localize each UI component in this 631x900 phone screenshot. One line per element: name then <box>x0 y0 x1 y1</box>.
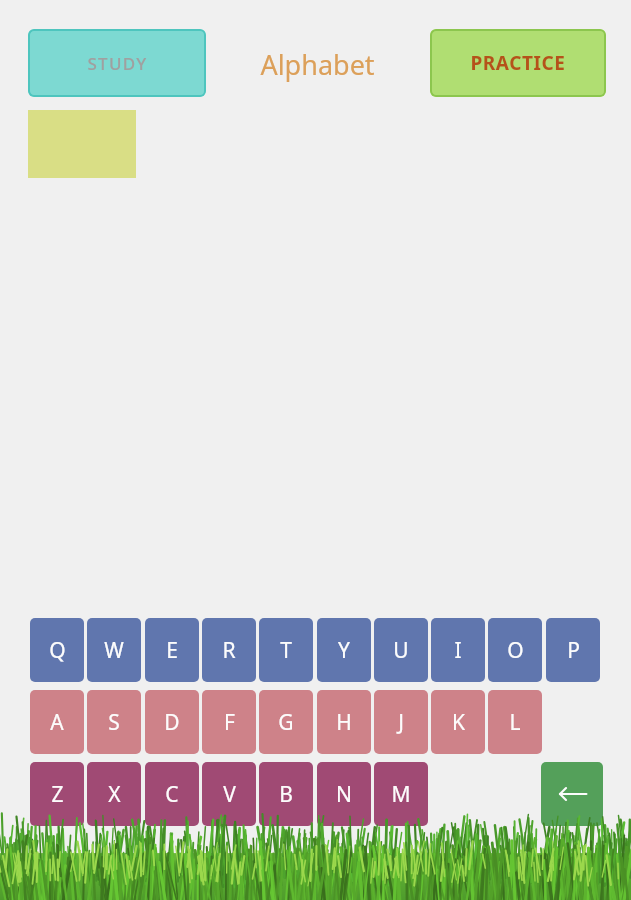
staticText: T <box>280 636 292 665</box>
staticText: R <box>222 636 236 665</box>
button[interactable]: H <box>317 690 371 754</box>
button[interactable]: Y <box>317 618 371 682</box>
button[interactable]: M <box>374 762 428 826</box>
staticText: P <box>567 636 580 665</box>
staticText: V <box>223 780 236 809</box>
staticText: Y <box>338 636 350 665</box>
button[interactable]: S <box>87 690 141 754</box>
button[interactable]: F <box>202 690 256 754</box>
staticText: W <box>104 636 124 665</box>
button[interactable]: PRACTICE <box>430 29 606 97</box>
button[interactable]: N <box>317 762 371 826</box>
button[interactable]: O <box>488 618 542 682</box>
button[interactable]: Z <box>30 762 84 826</box>
button[interactable]: R <box>202 618 256 682</box>
staticText: H <box>336 708 352 737</box>
button[interactable]: Backspace <box>541 762 603 826</box>
button[interactable]: Q <box>30 618 84 682</box>
staticText: STUDY <box>87 52 148 75</box>
staticText: S <box>108 708 120 737</box>
button[interactable]: K <box>431 690 485 754</box>
button[interactable]: W <box>87 618 141 682</box>
button[interactable]: V <box>202 762 256 826</box>
staticText: M <box>391 780 411 809</box>
button[interactable]: STUDY <box>28 29 206 97</box>
button[interactable]: J <box>374 690 428 754</box>
staticText: X <box>108 780 121 809</box>
staticText: D <box>164 708 180 737</box>
button[interactable]: D <box>145 690 199 754</box>
staticText: Z <box>51 780 64 809</box>
button[interactable]: X <box>87 762 141 826</box>
button[interactable]: C <box>145 762 199 826</box>
staticText: N <box>336 780 352 809</box>
staticText: J <box>398 708 404 737</box>
staticText: B <box>279 780 293 809</box>
staticText: L <box>509 708 521 737</box>
staticText: O <box>507 636 524 665</box>
button[interactable]: U <box>374 618 428 682</box>
staticText: K <box>452 708 465 737</box>
button[interactable]: E <box>145 618 199 682</box>
button[interactable]: I <box>431 618 485 682</box>
staticText: E <box>166 636 178 665</box>
staticText: G <box>278 708 294 737</box>
staticText: Alphabet <box>260 46 375 83</box>
staticText: Q <box>49 636 66 665</box>
staticText: C <box>165 780 179 809</box>
staticText: A <box>50 708 64 737</box>
staticText: F <box>224 708 235 737</box>
staticText: U <box>393 636 409 665</box>
button[interactable]: T <box>259 618 313 682</box>
staticText: I <box>454 636 462 665</box>
button[interactable]: L <box>488 690 542 754</box>
button[interactable]: P <box>546 618 600 682</box>
button[interactable]: A <box>30 690 84 754</box>
staticText: PRACTICE <box>470 50 566 76</box>
button[interactable]: B <box>259 762 313 826</box>
button[interactable]: G <box>259 690 313 754</box>
